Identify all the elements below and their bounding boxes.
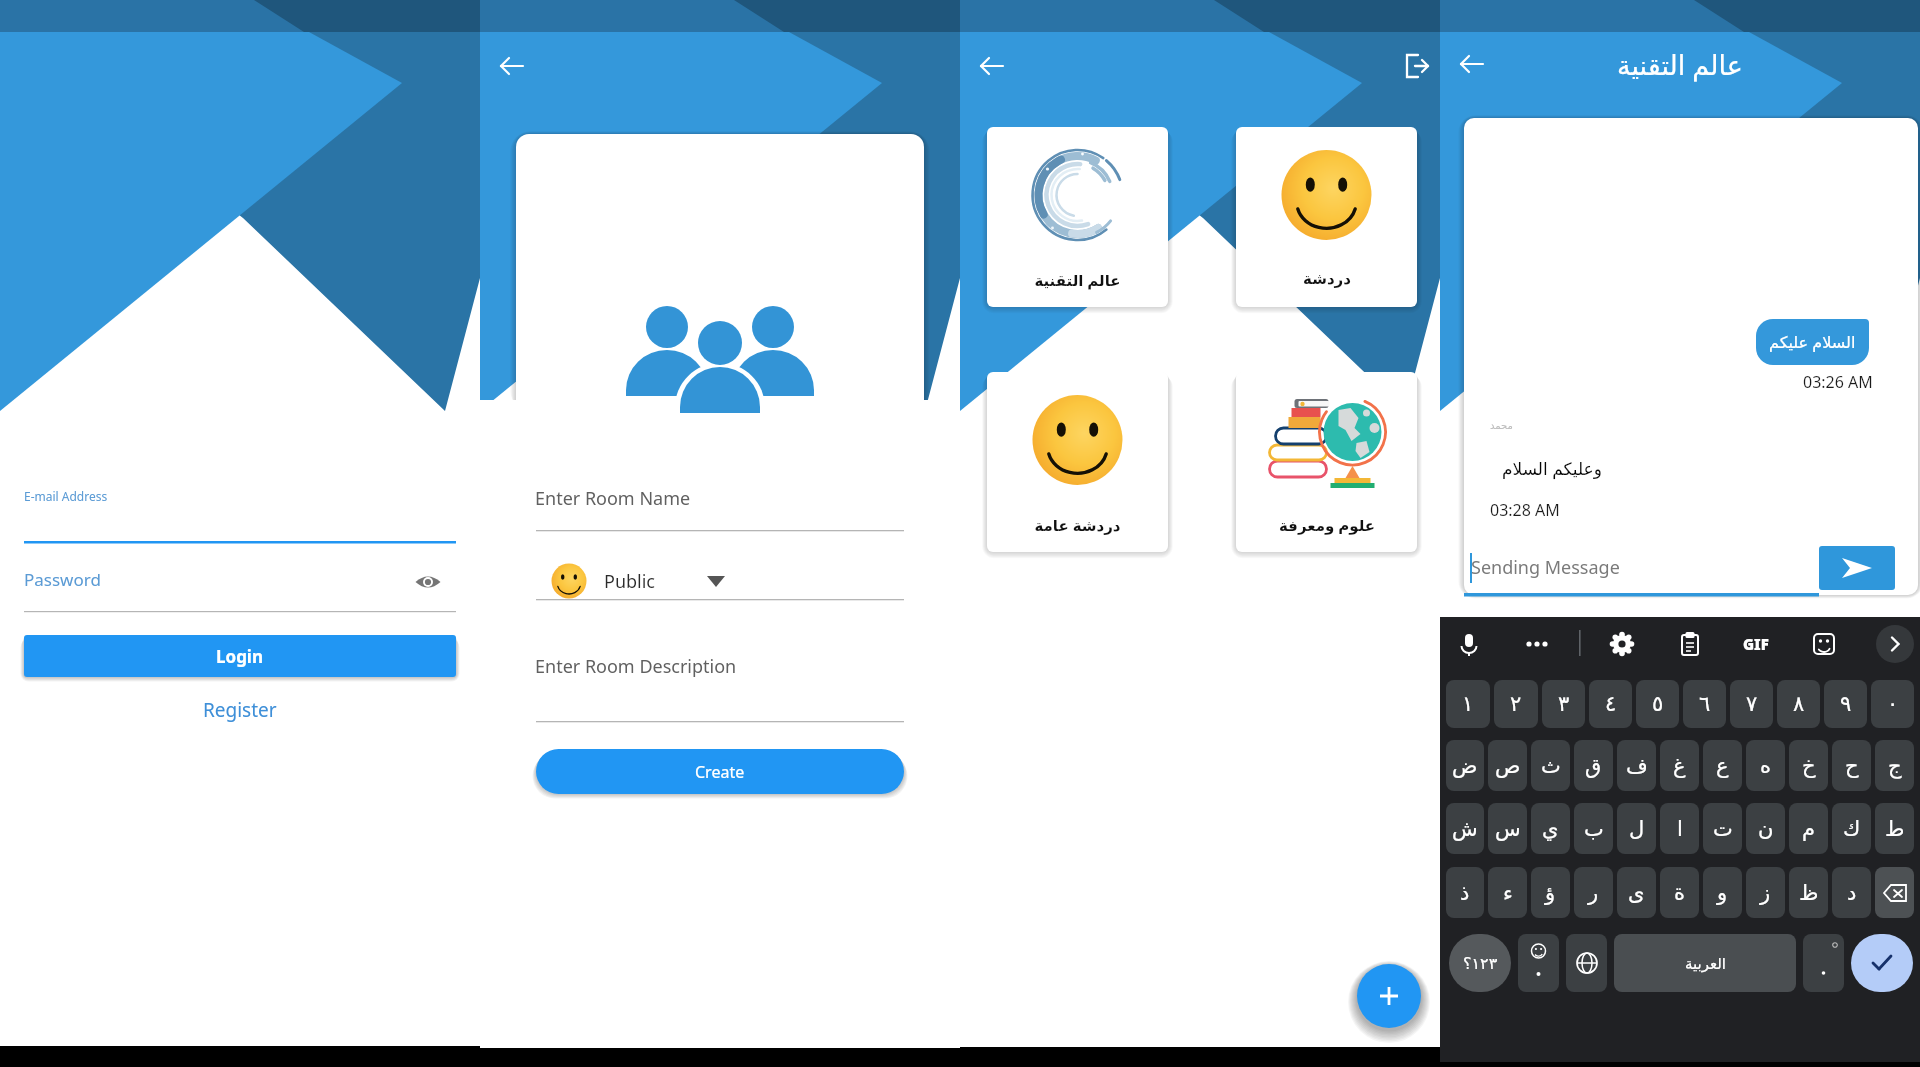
- button[interactable]: ط: [1875, 803, 1914, 854]
- staticText: ١: [1462, 692, 1474, 716]
- button[interactable]: ة: [1660, 867, 1699, 918]
- button[interactable]: Expand: [1876, 625, 1914, 663]
- button[interactable]: Public: [536, 560, 904, 602]
- staticText: ش: [1452, 817, 1478, 841]
- button[interactable]: ع: [1703, 740, 1742, 791]
- button[interactable]: ض: [1446, 740, 1484, 791]
- button[interactable]: خ: [1789, 740, 1828, 791]
- button[interactable]: س: [1488, 803, 1527, 854]
- button[interactable]: Create: [536, 749, 904, 794]
- button[interactable]: ر: [1574, 867, 1613, 918]
- button[interactable]: ٤: [1589, 680, 1632, 728]
- button[interactable]: ؤ: [1531, 867, 1570, 918]
- button[interactable]: ا: [1660, 803, 1699, 854]
- button[interactable]: ز: [1746, 867, 1785, 918]
- button[interactable]: Back: [970, 44, 1014, 88]
- staticText: عالم التقنية: [1034, 270, 1121, 290]
- staticText: غ: [1673, 754, 1686, 778]
- button[interactable]: Create room: [1357, 964, 1421, 1028]
- staticText: Login: [216, 645, 264, 668]
- button[interactable]: د: [1832, 867, 1871, 918]
- staticText: ظ: [1799, 881, 1819, 905]
- staticText: Create: [695, 761, 745, 783]
- button[interactable]: Voice input: [1454, 629, 1484, 659]
- staticText: ٣: [1558, 692, 1570, 716]
- button[interactable]: Clipboard: [1675, 629, 1705, 659]
- button[interactable]: ١: [1446, 680, 1490, 728]
- button[interactable]: عالم التقنية: [987, 127, 1168, 307]
- button[interactable]: ق: [1574, 740, 1613, 791]
- button[interactable]: Back: [490, 44, 534, 88]
- staticText: ٤: [1605, 692, 1617, 716]
- button[interactable]: Enter: [1851, 934, 1913, 992]
- button[interactable]: GIF: [1741, 629, 1771, 659]
- button[interactable]: العربية: [1614, 934, 1796, 992]
- staticText: السلام عليكم: [1769, 331, 1856, 353]
- staticText: س: [1495, 817, 1521, 841]
- button[interactable]: ف: [1617, 740, 1656, 791]
- button[interactable]: دردشة عامة: [987, 372, 1168, 552]
- button[interactable]: ٦: [1683, 680, 1726, 728]
- staticText: E-mail Address: [24, 488, 108, 504]
- staticText: ذ: [1460, 881, 1470, 905]
- staticText: Password: [24, 568, 101, 591]
- staticText: Sending Message: [1471, 555, 1620, 580]
- button[interactable]: ت: [1703, 803, 1742, 854]
- button[interactable]: Settings: [1607, 629, 1637, 659]
- staticText: خ: [1802, 754, 1816, 778]
- button[interactable]: Backspace: [1875, 867, 1914, 918]
- button[interactable]: ي: [1531, 803, 1570, 854]
- staticText: ل: [1629, 817, 1645, 841]
- button[interactable]: ٩: [1824, 680, 1867, 728]
- button[interactable]: ث: [1531, 740, 1570, 791]
- button[interactable]: Send: [1819, 546, 1895, 590]
- staticText: ٥: [1652, 692, 1664, 716]
- button[interactable]: Login: [24, 635, 456, 677]
- button[interactable]: ٣: [1542, 680, 1585, 728]
- button[interactable]: غ: [1660, 740, 1699, 791]
- button[interactable]: ٥: [1636, 680, 1679, 728]
- button[interactable]: [1803, 934, 1844, 992]
- button[interactable]: ١٢٣؟: [1449, 934, 1511, 992]
- button[interactable]: ش: [1446, 803, 1484, 854]
- button[interactable]: ى: [1617, 867, 1656, 918]
- button[interactable]: ل: [1617, 803, 1656, 854]
- button[interactable]: More: [1522, 629, 1552, 659]
- button[interactable]: Show password: [406, 560, 450, 604]
- button[interactable]: ن: [1746, 803, 1785, 854]
- button[interactable]: دردشة: [1236, 127, 1417, 307]
- button[interactable]: Stickers: [1809, 629, 1839, 659]
- staticText: عالم التقنية: [1617, 46, 1743, 83]
- button[interactable]: ب: [1574, 803, 1613, 854]
- button[interactable]: ج: [1875, 740, 1914, 791]
- button[interactable]: و: [1703, 867, 1742, 918]
- button[interactable]: ء: [1488, 867, 1527, 918]
- button[interactable]: ٨: [1777, 680, 1820, 728]
- button[interactable]: ه: [1746, 740, 1785, 791]
- staticText: ب: [1584, 817, 1604, 841]
- staticText: ٩: [1840, 692, 1852, 716]
- staticText: ٨: [1793, 692, 1805, 716]
- staticText: دردشة عامة: [1034, 515, 1121, 535]
- button[interactable]: Back: [1450, 42, 1494, 86]
- button[interactable]: ص: [1488, 740, 1527, 791]
- button[interactable]: ذ: [1446, 867, 1484, 918]
- staticText: وعليكم السلام: [1502, 457, 1602, 480]
- staticText: و: [1717, 881, 1728, 905]
- button[interactable]: ٠: [1871, 680, 1914, 728]
- button[interactable]: ٧: [1730, 680, 1773, 728]
- button[interactable]: علوم ومعرفة: [1236, 372, 1417, 552]
- button[interactable]: ٢: [1494, 680, 1538, 728]
- button[interactable]: ك: [1832, 803, 1871, 854]
- staticText: ك: [1843, 817, 1861, 841]
- staticText: ج: [1888, 754, 1902, 778]
- button[interactable]: Register: [0, 692, 480, 728]
- staticText: ٧: [1746, 692, 1758, 716]
- button[interactable]: ظ: [1789, 867, 1828, 918]
- button[interactable]: م: [1789, 803, 1828, 854]
- button[interactable]: Logout: [1395, 44, 1439, 88]
- button[interactable]: ح: [1832, 740, 1871, 791]
- button[interactable]: Change language: [1566, 934, 1607, 992]
- button[interactable]: Emoji: [1518, 934, 1559, 992]
- staticText: م: [1802, 817, 1816, 841]
